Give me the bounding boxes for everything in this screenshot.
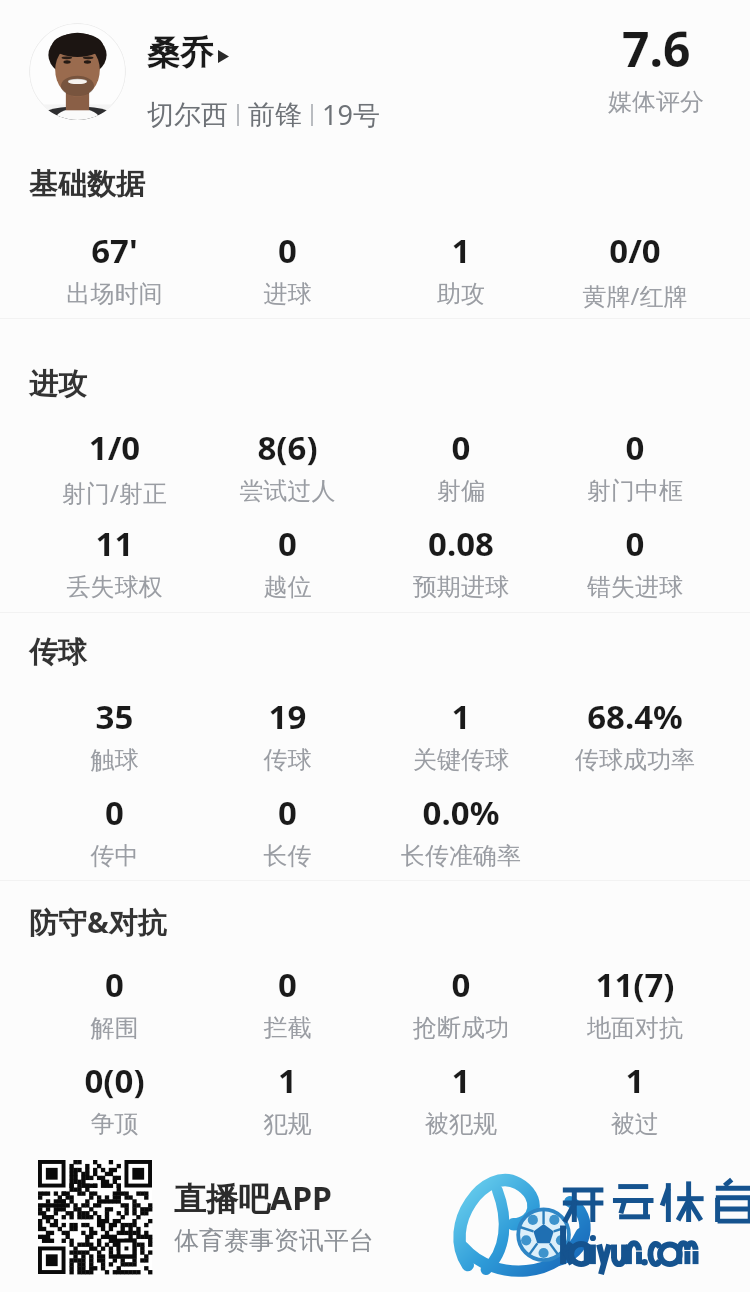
button[interactable]: 直播吧APP (174, 1176, 374, 1256)
staticText: 0 (374, 962, 548, 1007)
staticText: 争顶 (28, 1109, 201, 1139)
button[interactable]: 0.0% (374, 790, 548, 871)
staticText: 0.0% (374, 790, 548, 835)
staticText: 越位 (201, 572, 374, 602)
staticText: 1 (374, 1058, 548, 1103)
staticText: 0 (201, 962, 374, 1007)
staticText: 长传 (201, 841, 374, 871)
button[interactable]: 11 (28, 521, 201, 602)
staticText: 0 (28, 790, 201, 835)
staticText: 1 (201, 1058, 374, 1103)
staticText: 出场时间 (28, 279, 201, 309)
staticText: 68.4% (548, 694, 722, 739)
button[interactable]: 0 (548, 521, 722, 602)
button[interactable]: 0 (374, 425, 548, 506)
staticText: 地面对抗 (548, 1013, 722, 1043)
staticText: 0 (374, 425, 548, 470)
staticText: 关键传球 (374, 745, 548, 775)
button[interactable]: 7.6 (576, 16, 736, 117)
button[interactable]: 1 (374, 694, 548, 775)
button[interactable]: 1 (374, 1058, 548, 1139)
staticText: 桑乔 (147, 32, 213, 74)
button[interactable]: 67' (28, 228, 201, 309)
button[interactable]: 8(6) (201, 425, 374, 506)
staticText: 防守&对抗 (29, 902, 167, 942)
button[interactable]: 0 (28, 962, 201, 1043)
button[interactable]: 0(0) (28, 1058, 201, 1139)
staticText: 0 (28, 962, 201, 1007)
button[interactable]: 0 (28, 790, 201, 871)
button[interactable]: Kaiyun sports (470, 1168, 734, 1276)
button[interactable]: 0.08 (374, 521, 548, 602)
button[interactable]: 0 (201, 962, 374, 1043)
staticText: 1 (374, 694, 548, 739)
button[interactable]: 0 (201, 521, 374, 602)
button[interactable]: 1 (374, 228, 548, 309)
staticText: 被犯规 (374, 1109, 548, 1139)
staticText: 犯规 (201, 1109, 374, 1139)
button[interactable]: 11(7) (548, 962, 722, 1043)
staticText: 被过 (548, 1109, 722, 1139)
button[interactable]: 0/0 (548, 228, 722, 312)
staticText: 1 (548, 1058, 722, 1103)
staticText: 直播吧APP (174, 1176, 332, 1220)
button[interactable]: 1/0 (28, 425, 201, 509)
staticText: 11(7) (548, 962, 722, 1007)
staticText: 长传准确率 (374, 841, 548, 871)
staticText: 35 (28, 694, 201, 739)
staticText: 切尔西 (147, 98, 228, 132)
staticText: 拦截 (201, 1013, 374, 1043)
staticText: 进攻 (29, 366, 87, 403)
staticText: 0 (548, 425, 722, 470)
staticText: 7.6 (622, 16, 691, 81)
staticText: 射门/射正 (28, 476, 201, 509)
staticText: 0/0 (548, 228, 722, 273)
staticText: 前锋 (248, 98, 302, 132)
staticText: 解围 (28, 1013, 201, 1043)
staticText: 传球 (29, 634, 87, 671)
staticText: 67' (28, 228, 201, 273)
button[interactable]: Player photo (29, 23, 126, 120)
staticText: 0 (548, 521, 722, 566)
staticText: 1 (374, 228, 548, 273)
staticText: 体育赛事资讯平台 (174, 1225, 374, 1256)
button[interactable]: QR code (38, 1160, 152, 1274)
button[interactable]: 0 (201, 790, 374, 871)
staticText: 传球 (201, 745, 374, 775)
staticText: 抢断成功 (374, 1013, 548, 1043)
staticText: 基础数据 (29, 166, 145, 203)
staticText: 尝试过人 (201, 476, 374, 506)
staticText: 射门中框 (548, 476, 722, 506)
button[interactable]: 35 (28, 694, 201, 775)
staticText: 丢失球权 (28, 572, 201, 602)
button[interactable]: 0 (201, 228, 374, 309)
staticText: 19号 (322, 96, 380, 133)
staticText: 0(0) (28, 1058, 201, 1103)
staticText: 1/0 (28, 425, 201, 470)
staticText: 0.08 (374, 521, 548, 566)
staticText: 传中 (28, 841, 201, 871)
button[interactable]: 1 (548, 1058, 722, 1139)
staticText: 19 (201, 694, 374, 739)
staticText: 进球 (201, 279, 374, 309)
staticText: 助攻 (374, 279, 548, 309)
staticText: 11 (28, 521, 201, 566)
button[interactable]: 68.4% (548, 694, 722, 775)
button[interactable]: 0 (548, 425, 722, 506)
staticText: 预期进球 (374, 572, 548, 602)
staticText: 0 (201, 790, 374, 835)
staticText: 0 (201, 521, 374, 566)
staticText: 错失进球 (548, 572, 722, 602)
button[interactable]: 19 (201, 694, 374, 775)
staticText: 黄牌/红牌 (548, 279, 722, 312)
staticText: 媒体评分 (608, 87, 704, 117)
staticText: 8(6) (201, 425, 374, 470)
staticText: 0 (201, 228, 374, 273)
button[interactable]: 0 (374, 962, 548, 1043)
button[interactable]: 1 (201, 1058, 374, 1139)
staticText: 触球 (28, 745, 201, 775)
staticText: 传球成功率 (548, 745, 722, 775)
button[interactable]: 桑乔 (147, 32, 229, 74)
staticText: 射偏 (374, 476, 548, 506)
